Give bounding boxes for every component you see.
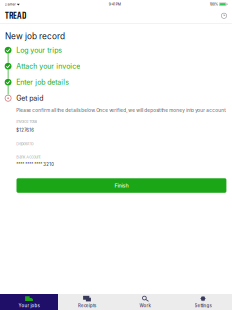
staticText: Log your trips bbox=[16, 46, 62, 54]
staticText: Deposit to bbox=[16, 141, 33, 146]
staticText: Receipts bbox=[78, 303, 96, 308]
staticText: Bank Account bbox=[16, 155, 40, 160]
staticText: Get paid bbox=[16, 94, 43, 102]
button[interactable]: Receipts bbox=[58, 294, 116, 310]
staticText: New job record bbox=[5, 31, 65, 41]
button[interactable]: Finish bbox=[16, 178, 226, 193]
button[interactable]: Work bbox=[116, 294, 174, 310]
staticText: Settings bbox=[194, 303, 211, 308]
staticText: Enter job details bbox=[16, 78, 69, 86]
staticText: $1276.16 bbox=[16, 128, 34, 133]
staticText: Carrier bbox=[4, 2, 15, 6]
staticText: Invoice Total bbox=[16, 119, 37, 124]
staticText: **** **** **** 3210 bbox=[16, 162, 54, 167]
staticText: 9:41 PM bbox=[109, 2, 121, 6]
staticText: Finish bbox=[114, 182, 128, 189]
button[interactable]: Your jobs bbox=[0, 294, 58, 310]
button[interactable]: Recent activity bbox=[219, 11, 229, 21]
button[interactable]: Settings bbox=[174, 294, 232, 310]
staticText: Your jobs bbox=[18, 303, 39, 308]
staticText: Attach your invoice bbox=[16, 62, 80, 70]
staticText: TREAD bbox=[5, 9, 26, 23]
staticText: Please confirm all the details below. On… bbox=[16, 108, 226, 113]
staticText: Work bbox=[139, 303, 150, 308]
staticText: 100% bbox=[210, 2, 218, 6]
